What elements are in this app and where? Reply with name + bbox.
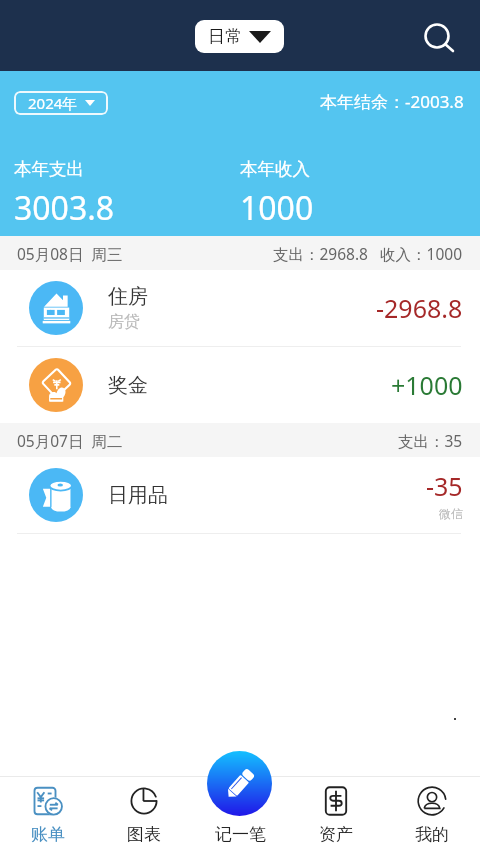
staticText: 资产 xyxy=(319,824,353,845)
button[interactable]: 2024年 xyxy=(14,91,108,115)
staticText: 账单 xyxy=(31,824,65,845)
staticText: 支出：2968.8 收入：1000 xyxy=(273,243,463,264)
staticText: -2968.8 xyxy=(376,291,463,325)
button[interactable]: 日用品 xyxy=(0,457,480,533)
button[interactable]: 日常 xyxy=(195,20,284,53)
button[interactable]: 记一笔 xyxy=(192,776,288,853)
staticText: 日常 xyxy=(208,26,242,47)
button[interactable]: 我的 xyxy=(384,776,480,853)
staticText: 日用品 xyxy=(108,483,168,508)
staticText: 05月07日 周二 xyxy=(17,430,123,451)
staticText: 05月08日 周三 xyxy=(17,243,123,264)
staticText: 图表 xyxy=(127,824,161,845)
staticText: +1000 xyxy=(391,368,463,402)
staticText: 本年结余：-2003.8 xyxy=(320,90,464,113)
staticText: 支出：35 xyxy=(398,430,463,451)
staticText: -35 xyxy=(426,469,463,503)
staticText: 记一笔 xyxy=(215,824,266,845)
staticText: 2024年 xyxy=(28,93,78,113)
staticText: 微信 xyxy=(439,506,463,521)
button[interactable]: 记一笔 xyxy=(207,751,272,816)
button[interactable]: 账单 xyxy=(0,776,96,853)
staticText: 1000 xyxy=(240,186,314,230)
button[interactable]: 住房 xyxy=(0,270,480,346)
button[interactable]: 奖金 xyxy=(0,347,480,423)
staticText: 我的 xyxy=(415,824,449,845)
staticText: 房贷 xyxy=(108,312,140,332)
button[interactable]: Search xyxy=(416,14,464,62)
button[interactable]: 图表 xyxy=(96,776,192,853)
button[interactable]: 资产 xyxy=(288,776,384,853)
staticText: 本年收入 xyxy=(240,158,310,180)
staticText: 住房 xyxy=(108,284,148,309)
staticText: 本年支出 xyxy=(14,158,84,180)
staticText: 3003.8 xyxy=(14,186,115,230)
staticText: 奖金 xyxy=(108,373,148,398)
